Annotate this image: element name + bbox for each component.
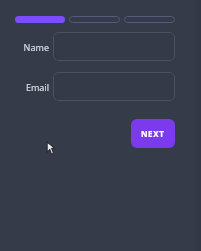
button[interactable]: NEXT [131,119,175,148]
button[interactable]: Step pending [69,16,120,23]
button[interactable]: Step 1 complete [15,16,65,23]
staticText: NEXT [141,128,165,139]
button[interactable]: Name input field [53,32,175,61]
button[interactable]: Email input field [53,72,175,101]
staticText: Email [15,81,49,93]
button[interactable]: Step pending [124,16,175,23]
staticText: Name [15,41,49,53]
